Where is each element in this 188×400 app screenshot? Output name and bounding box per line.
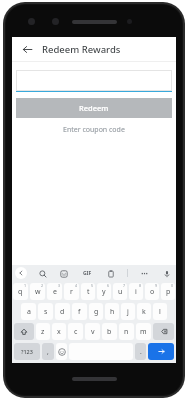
button[interactable]: Search — [37, 268, 48, 279]
button[interactable]: j — [121, 303, 135, 320]
staticText: Enter coupon code — [63, 125, 125, 135]
button[interactable]: g — [89, 303, 103, 320]
staticText: b — [107, 327, 112, 337]
button[interactable]: , — [42, 343, 54, 360]
button[interactable]: k — [137, 303, 151, 320]
staticText: ?123 — [21, 348, 33, 355]
staticText: t — [87, 287, 90, 297]
staticText: y — [102, 287, 106, 297]
staticText: , — [47, 347, 49, 356]
button[interactable]: Back — [17, 39, 37, 59]
button[interactable]: u — [113, 283, 127, 300]
staticText: z — [41, 327, 45, 337]
button[interactable]: e — [47, 283, 62, 300]
staticText: k — [142, 307, 146, 317]
button[interactable]: Shift — [14, 323, 34, 340]
staticText: 4 — [75, 283, 78, 288]
button[interactable]: m — [136, 323, 151, 340]
button[interactable]: t — [81, 283, 95, 300]
button[interactable]: GIF — [80, 268, 94, 279]
button[interactable]: Emoji — [56, 343, 67, 360]
staticText: d — [60, 307, 65, 317]
staticText: . — [140, 347, 142, 356]
staticText: 8 — [139, 283, 142, 288]
button[interactable]: n — [119, 323, 134, 340]
button[interactable]: q — [13, 283, 28, 300]
staticText: p — [166, 287, 171, 297]
staticText: h — [110, 307, 115, 317]
staticText: l — [159, 307, 161, 317]
button[interactable]: Backspace — [153, 323, 174, 340]
staticText: u — [118, 287, 123, 297]
button[interactable] — [16, 70, 172, 91]
staticText: m — [140, 327, 147, 337]
button[interactable]: x — [52, 323, 66, 340]
staticText: c — [74, 327, 78, 337]
staticText: e — [53, 287, 57, 297]
staticText: a — [27, 307, 31, 317]
staticText: 6 — [107, 283, 110, 288]
button[interactable]: s — [38, 303, 53, 320]
staticText: 1 — [24, 283, 27, 288]
button[interactable]: l — [153, 303, 167, 320]
staticText: q — [18, 287, 23, 297]
button[interactable]: Redeem — [16, 98, 172, 118]
staticText: Redeem Rewards — [42, 43, 121, 56]
staticText: g — [94, 307, 99, 317]
staticText: GIF — [83, 270, 92, 277]
button[interactable]: b — [102, 323, 117, 340]
staticText: 9 — [155, 283, 158, 288]
button[interactable]: z — [36, 323, 50, 340]
staticText: 3 — [58, 283, 61, 288]
button[interactable]: Close toolbar — [15, 267, 27, 279]
button[interactable]: p — [161, 283, 175, 300]
staticText: 2 — [41, 283, 44, 288]
button[interactable]: More options — [139, 268, 150, 279]
button[interactable]: a — [21, 303, 36, 320]
staticText: f — [78, 307, 81, 317]
button[interactable]: h — [105, 303, 119, 320]
button[interactable]: Stickers — [58, 268, 69, 279]
button[interactable]: o — [145, 283, 159, 300]
staticText: o — [150, 287, 155, 297]
button[interactable]: f — [72, 303, 87, 320]
button[interactable]: d — [55, 303, 70, 320]
button[interactable]: ?123 — [14, 343, 40, 360]
staticText: 5 — [91, 283, 94, 288]
button[interactable]: Clipboard — [105, 268, 116, 279]
staticText: 0 — [171, 283, 174, 288]
staticText: Redeem — [79, 103, 109, 113]
button[interactable]: r — [64, 283, 79, 300]
button[interactable]: i — [129, 283, 143, 300]
staticText: w — [35, 287, 41, 297]
staticText: r — [70, 287, 73, 297]
staticText: i — [135, 287, 137, 297]
staticText: n — [124, 327, 129, 337]
button[interactable]: v — [85, 323, 100, 340]
staticText: j — [127, 307, 129, 317]
button[interactable]: y — [97, 283, 111, 300]
button[interactable]: c — [68, 323, 83, 340]
button[interactable]: . — [135, 343, 146, 360]
staticText: x — [57, 327, 61, 337]
button[interactable]: w — [30, 283, 45, 300]
staticText: v — [91, 327, 95, 337]
staticText: 7 — [123, 283, 126, 288]
staticText: ⋯ — [141, 270, 148, 278]
button[interactable]: Voice input — [161, 268, 172, 279]
staticText: s — [44, 307, 48, 317]
button[interactable]: Enter — [148, 343, 174, 360]
